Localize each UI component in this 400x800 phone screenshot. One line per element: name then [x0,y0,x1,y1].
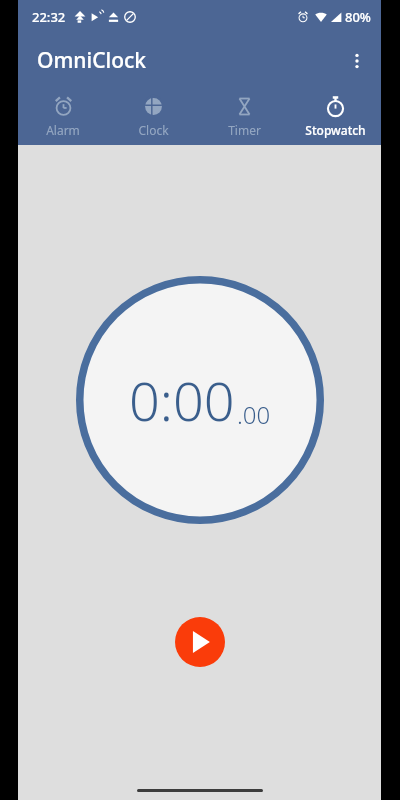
button[interactable]: Clock [108,88,199,145]
staticText: .00 [237,398,271,431]
staticText: OmniClock [37,46,147,75]
staticText: Stopwatch [305,122,366,138]
staticText: 80% [345,8,371,26]
button[interactable]: 0:00 [76,276,324,524]
button[interactable]: Stopwatch [290,88,381,145]
staticText: 22:32 [32,8,66,26]
staticText: 0:00 [129,363,235,437]
button[interactable]: Start stopwatch [175,617,225,667]
staticText: Clock [138,122,169,138]
button[interactable]: Alarm [18,88,108,145]
button[interactable]: More options [333,37,381,85]
button[interactable]: Timer [199,88,290,145]
staticText: Timer [228,122,261,138]
staticText: Alarm [46,122,80,138]
